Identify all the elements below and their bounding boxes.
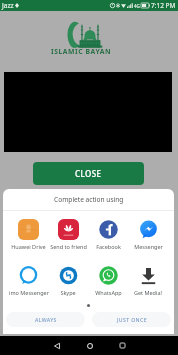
button[interactable]: Get Media! [128, 265, 168, 296]
staticText: Get Media! [134, 289, 162, 296]
button[interactable]: WhatsApp [88, 265, 128, 296]
staticText: JUST ONCE [117, 316, 147, 323]
staticText: imo Messenger [9, 289, 49, 296]
staticText: 4G [134, 3, 140, 9]
staticText: Facebook [96, 243, 121, 250]
staticText: WhatsApp [95, 289, 122, 296]
staticText: ALWAYS [35, 316, 57, 323]
button[interactable]: Facebook [88, 219, 128, 250]
button[interactable]: JUST ONCE [92, 312, 171, 327]
button[interactable]: Send to friend [48, 219, 88, 250]
staticText: CLOSE [75, 168, 102, 179]
button[interactable]: Messenger [128, 219, 168, 250]
staticText: Jazz [2, 1, 14, 10]
staticText: Skype [60, 289, 76, 296]
staticText: 7:12 PM [151, 1, 176, 10]
button[interactable]: Recent apps [114, 337, 131, 354]
button[interactable]: CLOSE [33, 162, 144, 185]
button[interactable]: imo Messenger [9, 265, 48, 296]
staticText: Huawei Drive [11, 243, 46, 250]
button[interactable]: Back [48, 337, 65, 354]
staticText: Messenger [134, 243, 163, 250]
button[interactable]: Skype [48, 265, 88, 296]
staticText: ISLAMIC BAYAN [51, 47, 112, 56]
staticText: Send to friend [50, 243, 87, 250]
button[interactable]: ALWAYS [6, 312, 85, 327]
button[interactable]: Huawei Drive [9, 219, 48, 250]
button[interactable]: Home [81, 337, 98, 354]
staticText: Complete action using [54, 195, 124, 204]
